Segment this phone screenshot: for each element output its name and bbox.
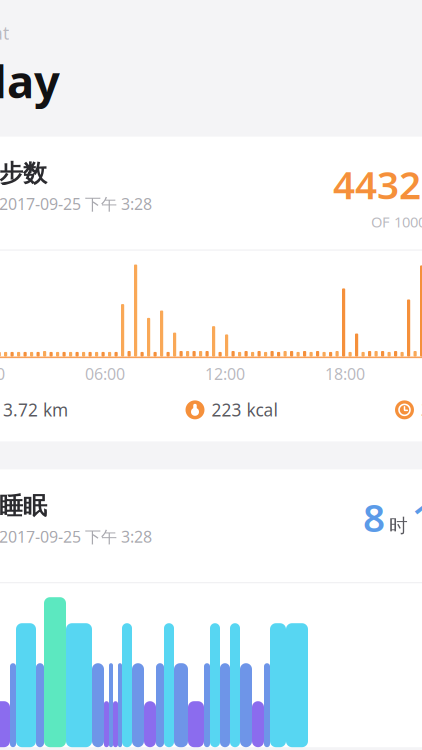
staticText: 步数: [0, 159, 47, 188]
staticText: 8: [363, 491, 385, 543]
staticText: 2017-09-25 下午 3:28: [0, 193, 152, 214]
staticText: 睡眠: [0, 491, 47, 521]
staticText: 2017-09-25 下午 3:28: [0, 526, 152, 547]
staticText: 06:00: [85, 363, 125, 384]
staticText: 18:00: [325, 363, 365, 384]
button[interactable]: 步数: [0, 137, 422, 441]
staticText: 35 min: [421, 398, 422, 421]
staticText: 00:00: [0, 363, 5, 384]
button[interactable]: 睡眠: [0, 469, 422, 747]
staticText: 10: [412, 491, 422, 543]
staticText: 09-25, Sat: [0, 21, 9, 44]
staticText: Today: [0, 50, 60, 111]
staticText: 时: [389, 514, 408, 537]
staticText: OF 10000 STEPS: [371, 212, 422, 231]
staticText: 4432: [333, 159, 421, 210]
staticText: 12:00: [205, 363, 245, 384]
staticText: 223 kcal: [211, 398, 277, 421]
staticText: 3.72 km: [3, 398, 68, 421]
